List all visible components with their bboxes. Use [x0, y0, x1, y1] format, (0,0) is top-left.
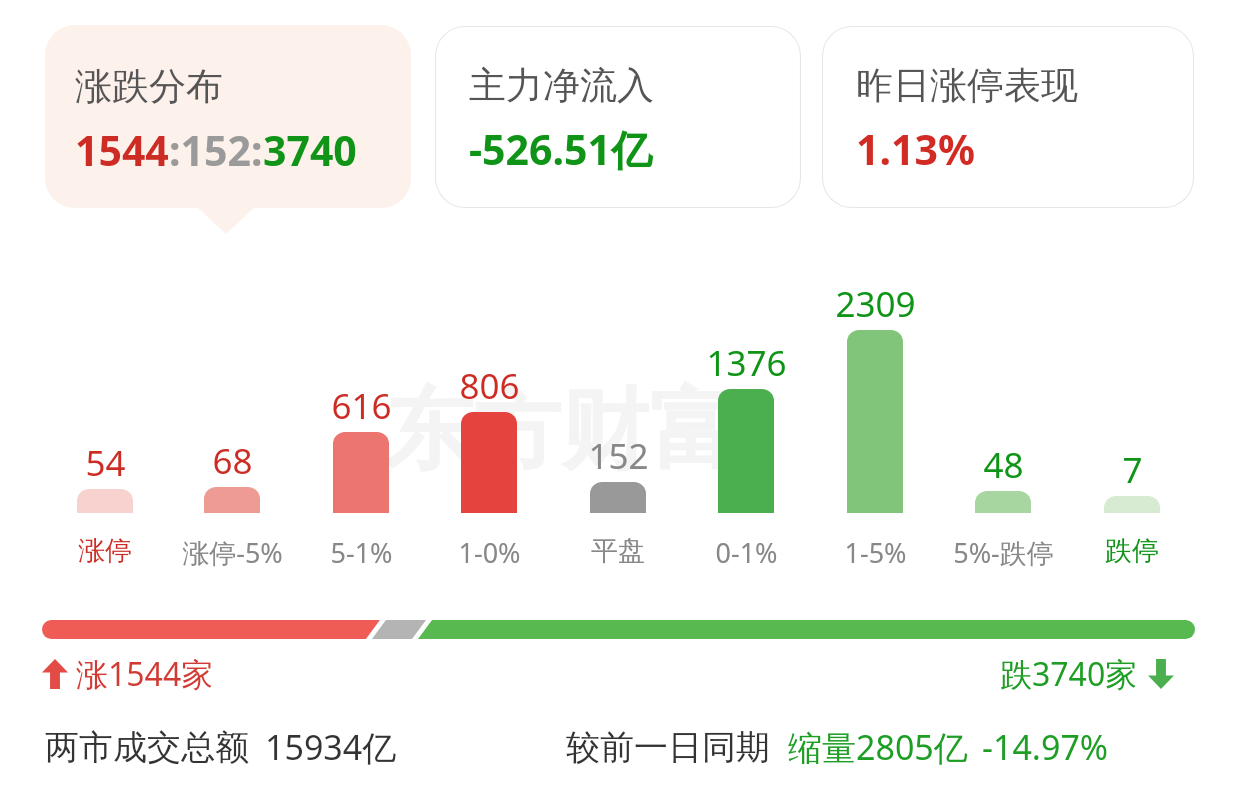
staticText: 跌停 — [1105, 534, 1159, 568]
button[interactable]: Advancing — [42, 652, 214, 696]
button[interactable]: 0-1% — [666, 534, 826, 571]
button[interactable]: 昨日涨停表现 — [822, 26, 1194, 208]
staticText: 54 — [85, 439, 126, 487]
staticText: 两市成交总额 — [45, 726, 249, 769]
staticText: 涨停 — [78, 534, 132, 568]
button[interactable]: 主力净流入 — [435, 26, 801, 208]
staticText: 1-5% — [844, 534, 907, 571]
staticText: 3740 — [263, 122, 357, 178]
staticText: 5%-跌停 — [953, 534, 1054, 571]
staticText: 平盘 — [591, 534, 645, 568]
staticText: 1376 — [706, 339, 787, 387]
staticText: :152: — [169, 122, 263, 178]
staticText: 涨1544家 — [76, 652, 214, 696]
staticText: -14.97% — [982, 724, 1109, 770]
staticText: 5-1% — [330, 534, 393, 571]
staticText: 1544 — [75, 122, 169, 178]
staticText: -526.51亿 — [469, 121, 652, 177]
staticText: 0-1% — [715, 534, 778, 571]
staticText: 昨日涨停表现 — [856, 62, 1078, 109]
staticText: 15934亿 — [265, 724, 397, 770]
button[interactable]: 涨跌分布 — [45, 25, 411, 208]
button[interactable]: 1-0% — [409, 534, 569, 571]
button[interactable]: 5-1% — [281, 534, 441, 571]
staticText: 1-0% — [458, 534, 521, 571]
staticText: 东方财富 — [385, 375, 737, 486]
staticText: 涨停-5% — [182, 534, 283, 571]
staticText: 806 — [459, 362, 520, 410]
button[interactable]: 平盘 — [538, 534, 698, 568]
staticText: 616 — [331, 382, 392, 430]
button[interactable]: 跌3740家 — [1000, 652, 1174, 696]
staticText: 跌3740家 — [1000, 652, 1138, 696]
staticText: 缩量2805亿 — [788, 724, 968, 770]
button[interactable]: 较前一日同期 — [566, 724, 1109, 770]
staticText: 主力净流入 — [469, 62, 654, 109]
button[interactable]: 涨停-5% — [152, 534, 312, 571]
staticText: 152 — [588, 432, 649, 480]
staticText: 68 — [212, 437, 253, 485]
staticText: 48 — [983, 441, 1024, 489]
other: Advancing — [42, 659, 68, 689]
staticText: 2309 — [835, 280, 916, 328]
staticText: 7 — [1122, 446, 1143, 494]
button[interactable]: 两市成交总额 — [45, 724, 397, 770]
staticText: 涨跌分布 — [75, 63, 223, 110]
button[interactable]: 涨停 — [25, 534, 185, 568]
staticText: 较前一日同期 — [566, 726, 770, 769]
other: Declining — [1148, 659, 1174, 689]
staticText: 1.13% — [856, 121, 975, 177]
button[interactable]: 5%-跌停 — [923, 534, 1083, 571]
button[interactable]: 跌停 — [1052, 534, 1212, 568]
button[interactable]: 1-5% — [795, 534, 955, 571]
